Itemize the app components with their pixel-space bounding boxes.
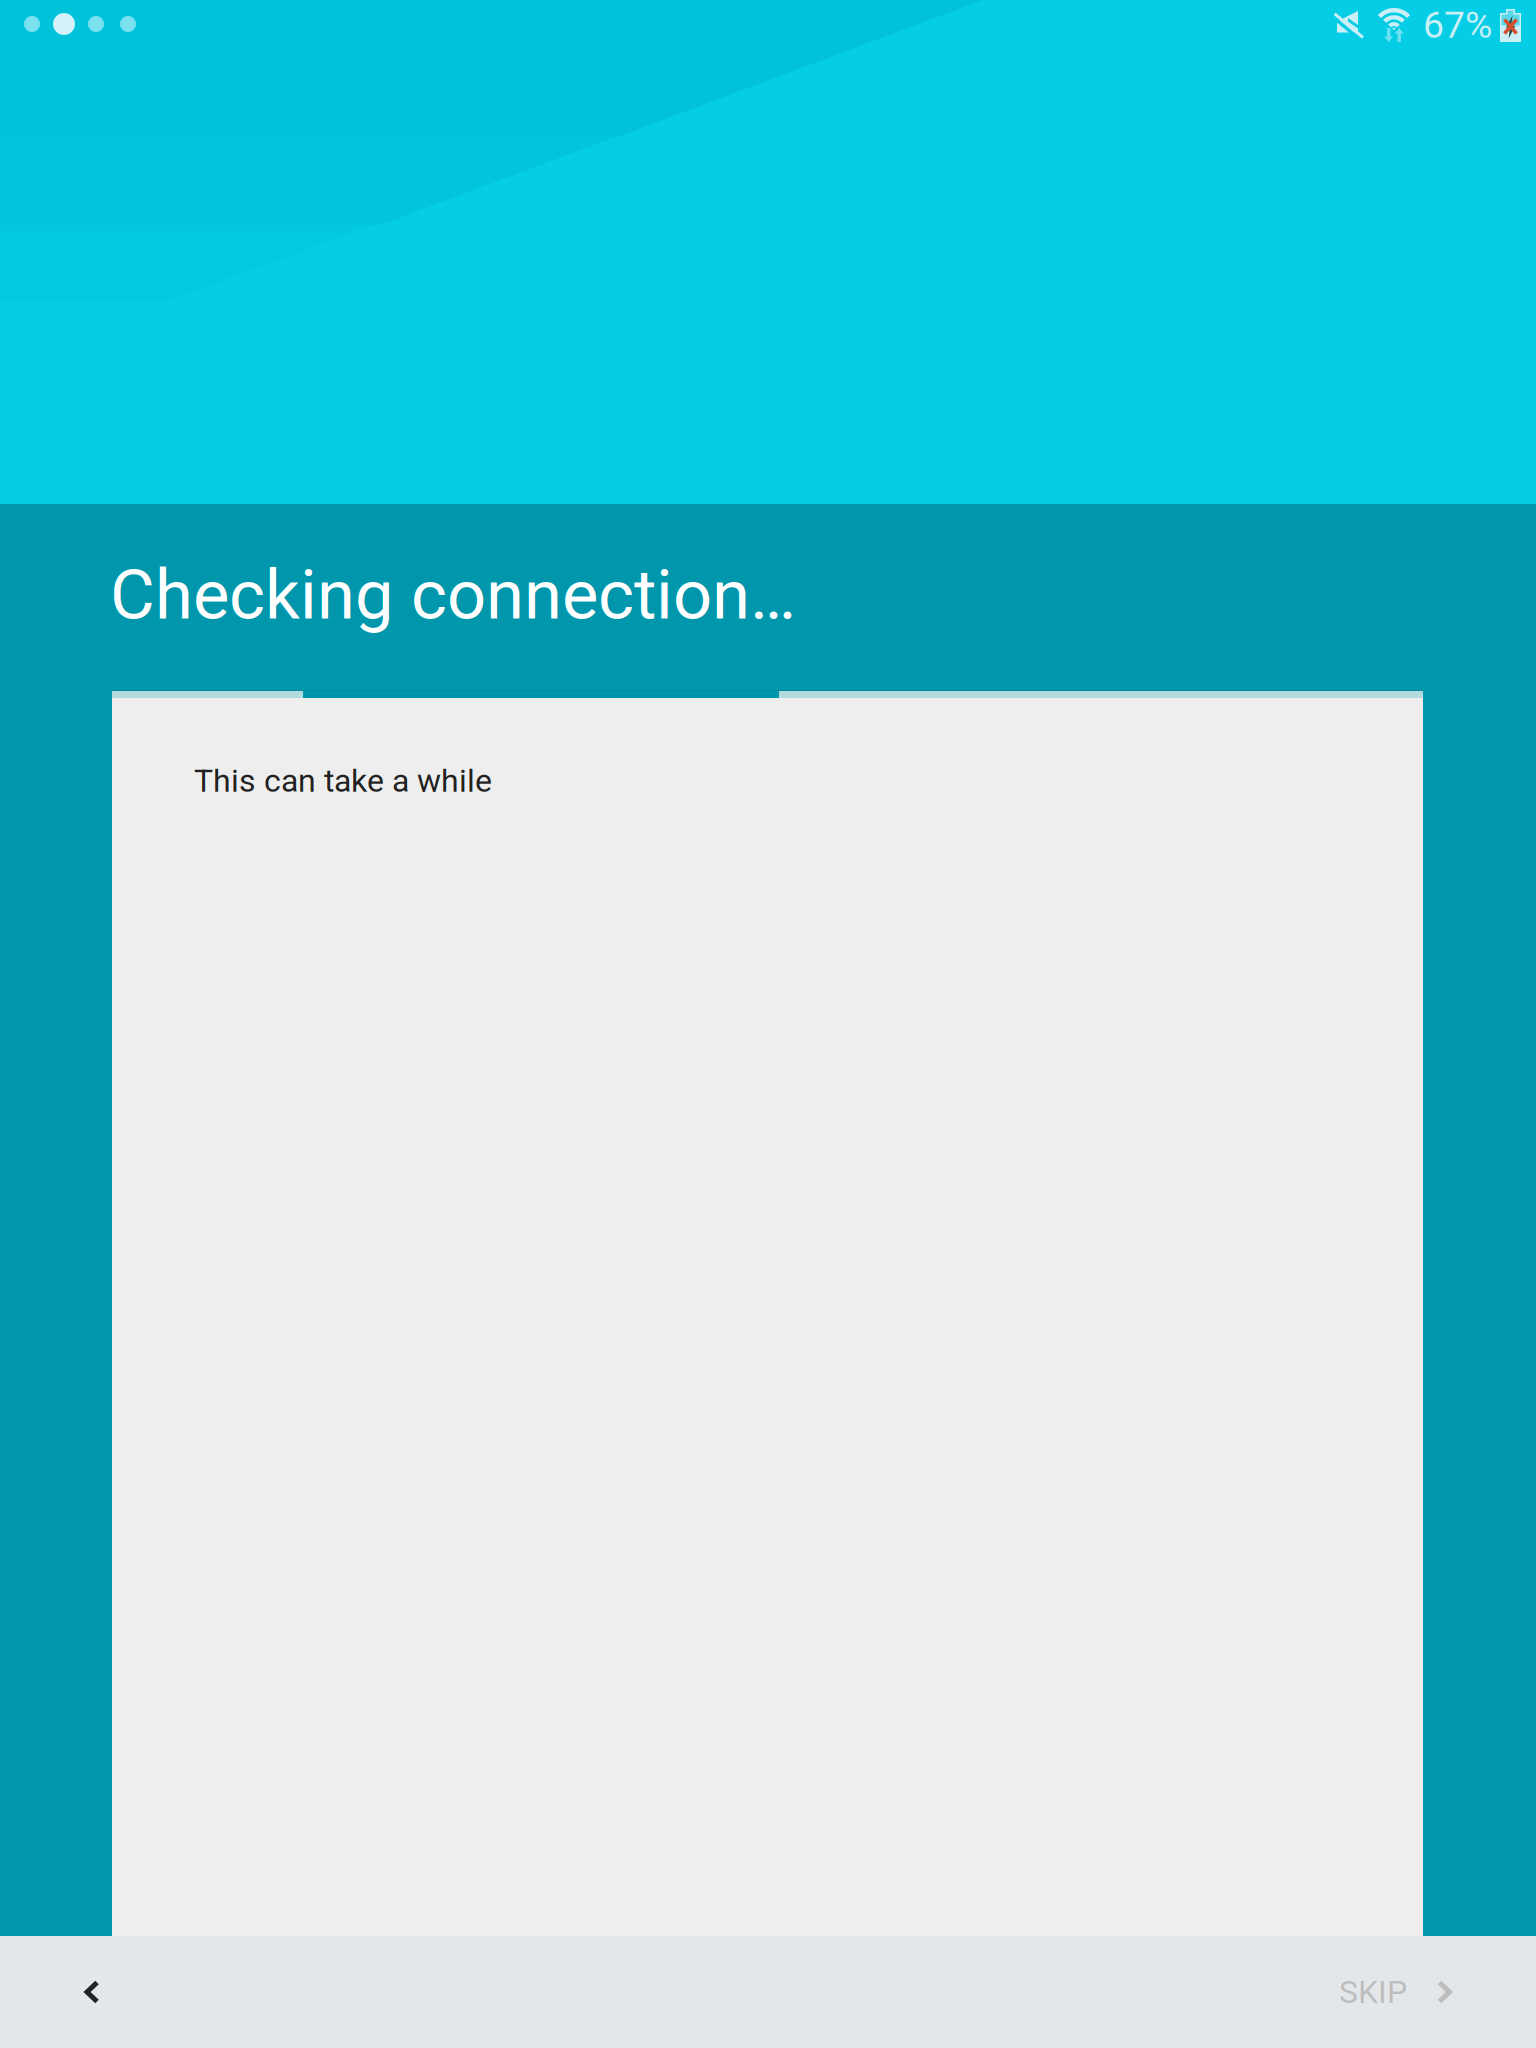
staticText: Checking connection… bbox=[110, 555, 796, 635]
button[interactable]: SKIP bbox=[1299, 1936, 1536, 2048]
staticText: 67% bbox=[1423, 3, 1492, 47]
staticText: This can take a while bbox=[194, 762, 492, 799]
staticText: SKIP bbox=[1339, 1973, 1407, 2011]
button[interactable]: Back bbox=[0, 1936, 184, 2048]
